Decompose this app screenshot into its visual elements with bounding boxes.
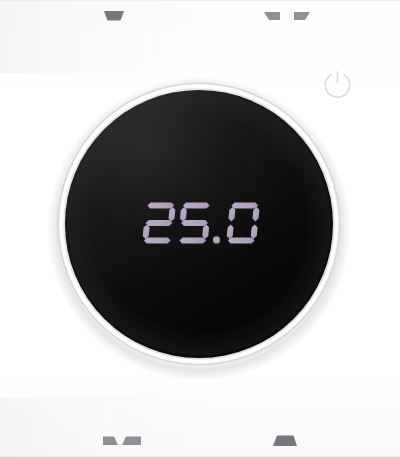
button[interactable]: Power [322,70,354,102]
button[interactable]: Temperature dial 25.0 degrees [65,90,333,358]
